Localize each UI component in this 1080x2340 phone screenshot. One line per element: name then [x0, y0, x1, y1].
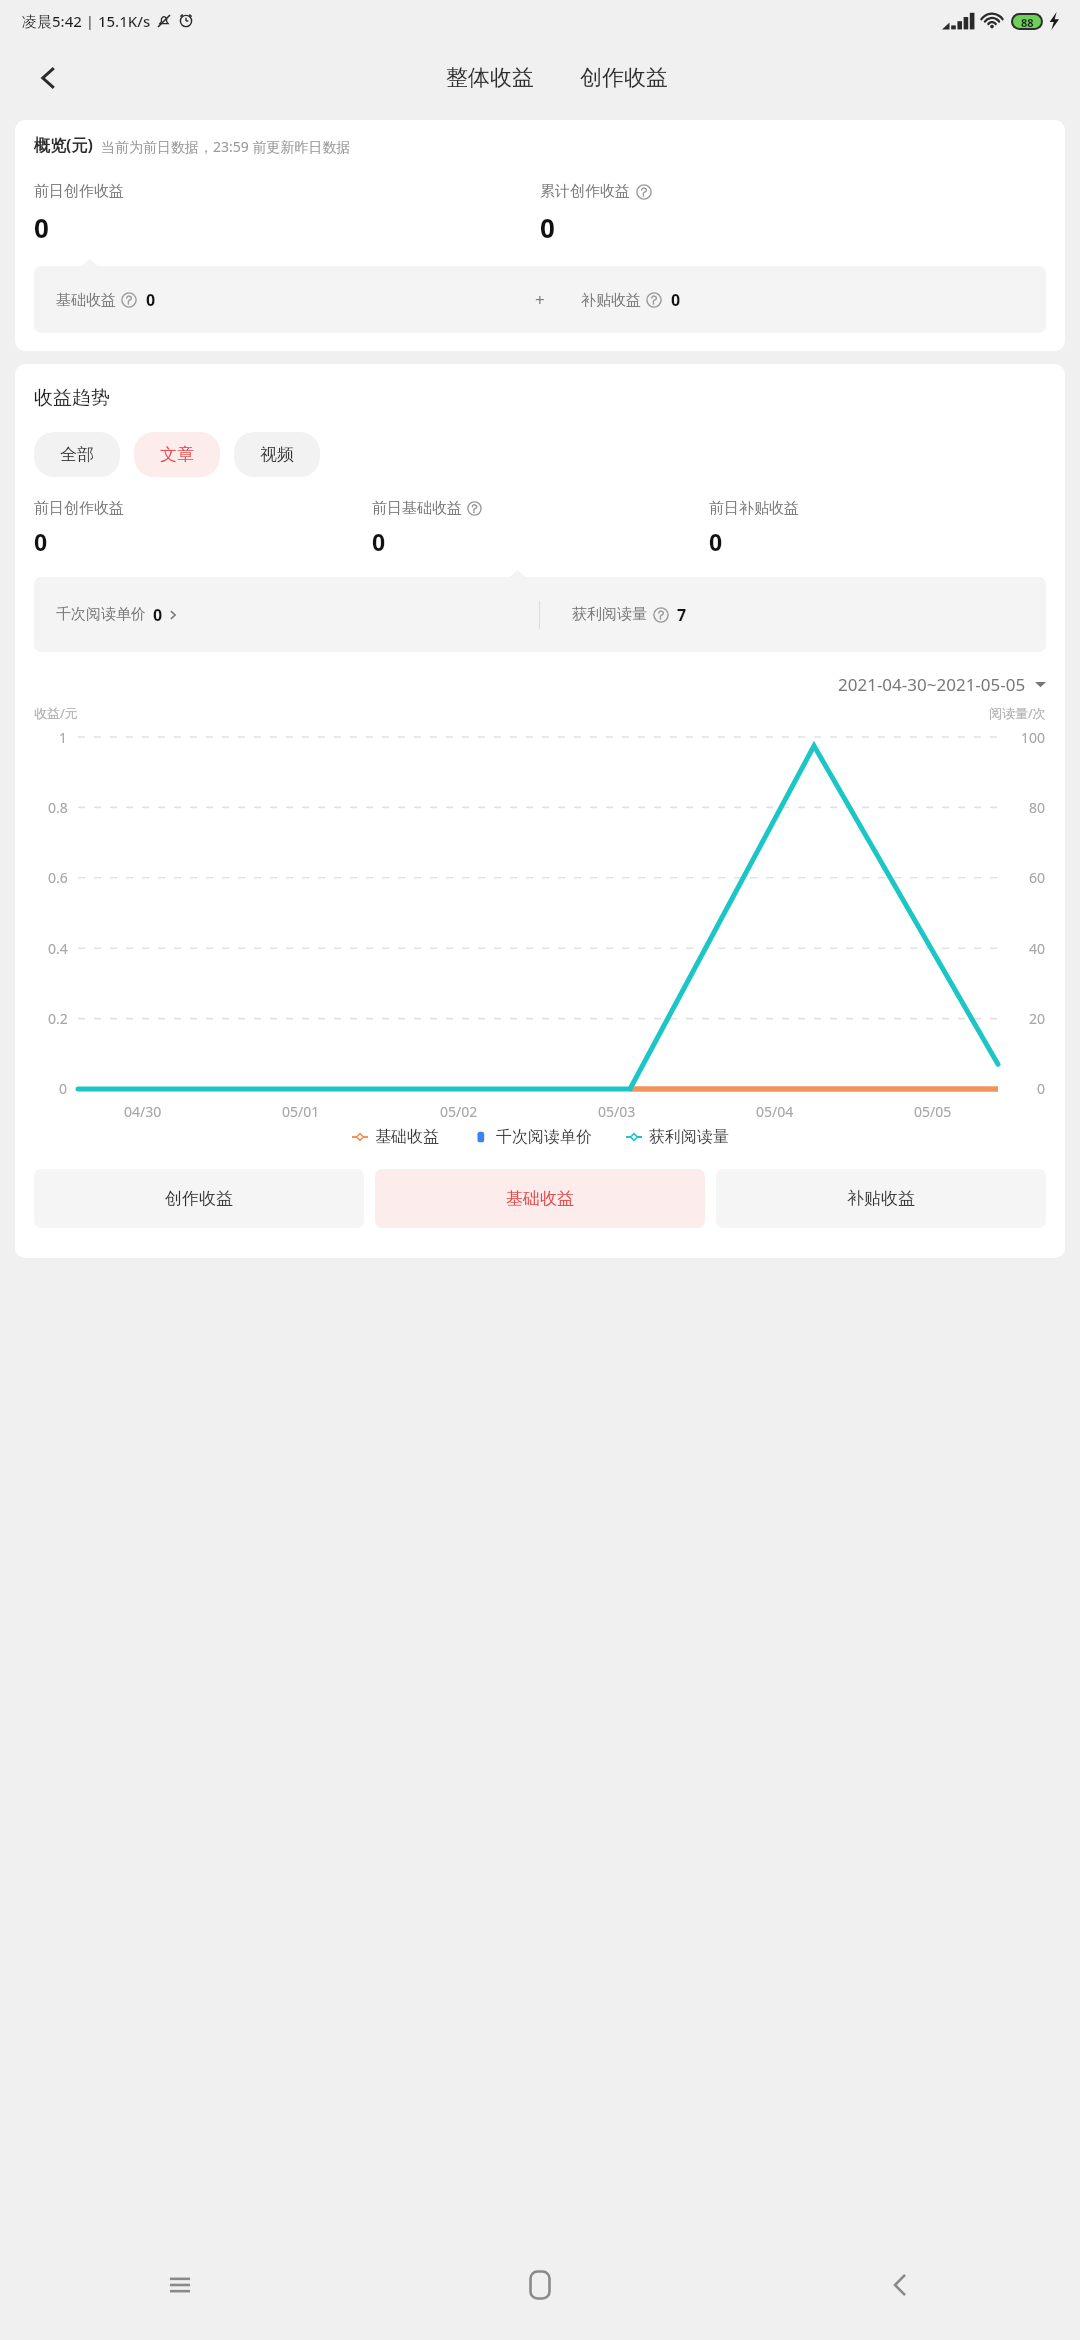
staticText: 基础收益: [56, 291, 116, 310]
staticText: 创作收益: [165, 1188, 233, 1209]
button[interactable]: 千次阅读单价: [34, 577, 539, 652]
staticText: 千次阅读单价: [496, 1127, 592, 1147]
button[interactable]: 整体收益: [430, 56, 550, 100]
staticText: 前日补贴收益: [709, 499, 799, 518]
staticText: 0: [540, 210, 555, 245]
button[interactable]: 文章: [134, 432, 220, 477]
staticText: 0: [1037, 1079, 1046, 1098]
staticText: 创作收益: [580, 64, 668, 92]
staticText: 前日创作收益: [34, 182, 124, 201]
staticText: 0: [372, 526, 386, 557]
staticText: 60: [1029, 868, 1046, 887]
staticText: 0.8: [48, 798, 68, 817]
staticText: 补贴收益: [581, 291, 641, 310]
staticText: 0: [34, 526, 48, 557]
staticText: 凌晨5:42 | 15.1K/s: [22, 11, 151, 31]
staticText: 收益/元: [34, 704, 78, 722]
staticText: 05/03: [598, 1102, 636, 1121]
button[interactable]: 2021-04-30~2021-05-05: [34, 673, 1046, 696]
staticText: 0: [709, 526, 723, 557]
staticText: 概览(元): [34, 134, 93, 156]
staticText: 整体收益: [446, 64, 534, 92]
staticText: 0: [146, 289, 156, 311]
staticText: 累计创作收益: [540, 182, 630, 201]
staticText: 100: [1021, 728, 1046, 747]
button[interactable]: 基础收益: [352, 1127, 439, 1147]
staticText: 0: [34, 210, 49, 245]
staticText: 05/05: [914, 1102, 952, 1121]
staticText: 05/01: [282, 1102, 320, 1121]
button[interactable]: 获利阅读量: [626, 1127, 729, 1147]
button[interactable]: Recents: [0, 2230, 360, 2340]
button[interactable]: 获利阅读量: [540, 577, 1046, 652]
button[interactable]: 全部: [34, 432, 120, 477]
staticText: 20: [1029, 1009, 1046, 1028]
button[interactable]: 创作收益: [564, 56, 684, 100]
button[interactable]: 视频: [234, 432, 320, 477]
button[interactable]: Back: [720, 2230, 1080, 2340]
staticText: 阅读量/次: [989, 704, 1046, 722]
button[interactable]: 补贴收益: [581, 289, 1046, 311]
staticText: 0.6: [48, 868, 68, 887]
staticText: 收益趋势: [34, 386, 110, 410]
staticText: 0.4: [48, 939, 68, 958]
staticText: 基础收益: [375, 1127, 439, 1147]
button[interactable]: 基础收益: [56, 289, 535, 311]
staticText: 当前为前日数据，23:59 前更新昨日数据: [101, 137, 351, 156]
staticText: 80: [1029, 798, 1046, 817]
staticText: 40: [1029, 939, 1046, 958]
staticText: 视频: [260, 444, 294, 465]
button[interactable]: Home: [360, 2230, 720, 2340]
staticText: 0.2: [48, 1009, 68, 1028]
staticText: 7: [677, 604, 687, 626]
staticText: 05/02: [440, 1102, 478, 1121]
staticText: 前日创作收益: [34, 499, 124, 518]
staticText: 文章: [160, 444, 194, 465]
staticText: 0: [671, 289, 681, 311]
staticText: 全部: [60, 444, 94, 465]
staticText: +: [535, 288, 545, 311]
staticText: 04/30: [124, 1102, 162, 1121]
button[interactable]: 千次阅读单价: [473, 1127, 592, 1147]
staticText: 05/04: [756, 1102, 794, 1121]
staticText: 1: [59, 728, 68, 747]
staticText: 获利阅读量: [572, 605, 647, 624]
staticText: 获利阅读量: [649, 1127, 729, 1147]
button[interactable]: Back: [24, 54, 72, 102]
button[interactable]: 基础收益: [375, 1169, 705, 1228]
button[interactable]: 补贴收益: [716, 1169, 1046, 1228]
button[interactable]: 创作收益: [34, 1169, 364, 1228]
staticText: 0: [59, 1079, 68, 1098]
staticText: 0: [153, 604, 163, 626]
staticText: 88: [1021, 15, 1034, 28]
staticText: 前日基础收益: [372, 499, 462, 518]
staticText: 基础收益: [506, 1188, 574, 1209]
staticText: 千次阅读单价: [56, 605, 146, 624]
staticText: 2021-04-30~2021-05-05: [838, 673, 1026, 696]
staticText: 补贴收益: [847, 1188, 915, 1209]
